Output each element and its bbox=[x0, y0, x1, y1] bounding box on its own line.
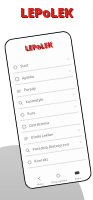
button[interactable]: Poradnia Dietetyczna bbox=[20, 136, 87, 157]
staticText: Kosmetyki bbox=[25, 92, 72, 104]
staticText: Strona główna bbox=[50, 178, 68, 183]
staticText: Start bbox=[20, 57, 67, 69]
staticText: LEPoLEK bbox=[25, 40, 54, 54]
button[interactable]: Menu bbox=[29, 175, 50, 186]
staticText: Porady bbox=[23, 80, 71, 92]
button[interactable]: Card bbox=[67, 169, 87, 181]
button[interactable]: Kosmetyki bbox=[13, 88, 80, 110]
staticText: LEPoLEK bbox=[20, 3, 73, 21]
staticText: Ostrzeżenia bbox=[29, 116, 76, 128]
button[interactable]: Ulotki Leków bbox=[18, 124, 85, 145]
staticText: Karta bbox=[74, 176, 82, 180]
staticText: Ulotki Leków bbox=[30, 128, 78, 140]
button[interactable]: Home bbox=[49, 172, 69, 183]
staticText: Apteka bbox=[22, 69, 69, 80]
staticText: Menu bbox=[37, 181, 44, 185]
button[interactable]: Ostrzeżenia bbox=[16, 112, 83, 134]
staticText: Kontakt bbox=[34, 152, 81, 164]
button[interactable]: Apteka bbox=[9, 65, 76, 86]
staticText: Poradnia Dietetyczna bbox=[32, 140, 79, 152]
staticText: LEPoLEK bbox=[21, 4, 74, 22]
staticText: LEPoLEK bbox=[24, 40, 53, 54]
staticText: Kurs bbox=[27, 104, 74, 116]
button[interactable]: Kurs bbox=[15, 100, 82, 122]
button[interactable]: Kontakt bbox=[22, 148, 89, 169]
button[interactable]: Start bbox=[7, 53, 74, 74]
button[interactable]: Porady bbox=[11, 76, 78, 98]
